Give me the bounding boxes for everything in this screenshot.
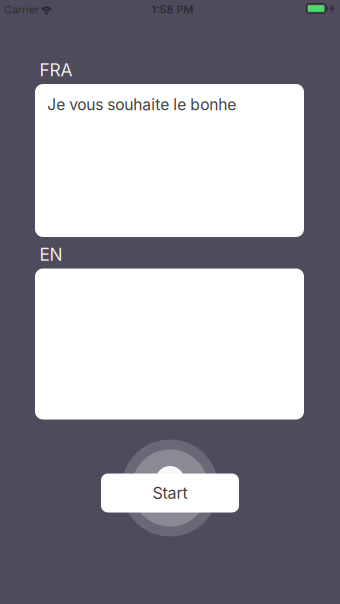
staticText: Je vous souhaite le bonhe bbox=[47, 95, 236, 114]
staticText: EN bbox=[39, 244, 62, 265]
button[interactable]: Je vous souhaite le bonhe bbox=[35, 84, 304, 237]
staticText: Carrier bbox=[4, 3, 39, 16]
button[interactable]: Start bbox=[101, 473, 239, 512]
staticText: FRA bbox=[39, 59, 72, 80]
staticText: Start bbox=[152, 483, 187, 503]
staticText: 1:58 PM bbox=[151, 3, 193, 16]
button[interactable] bbox=[35, 268, 304, 419]
